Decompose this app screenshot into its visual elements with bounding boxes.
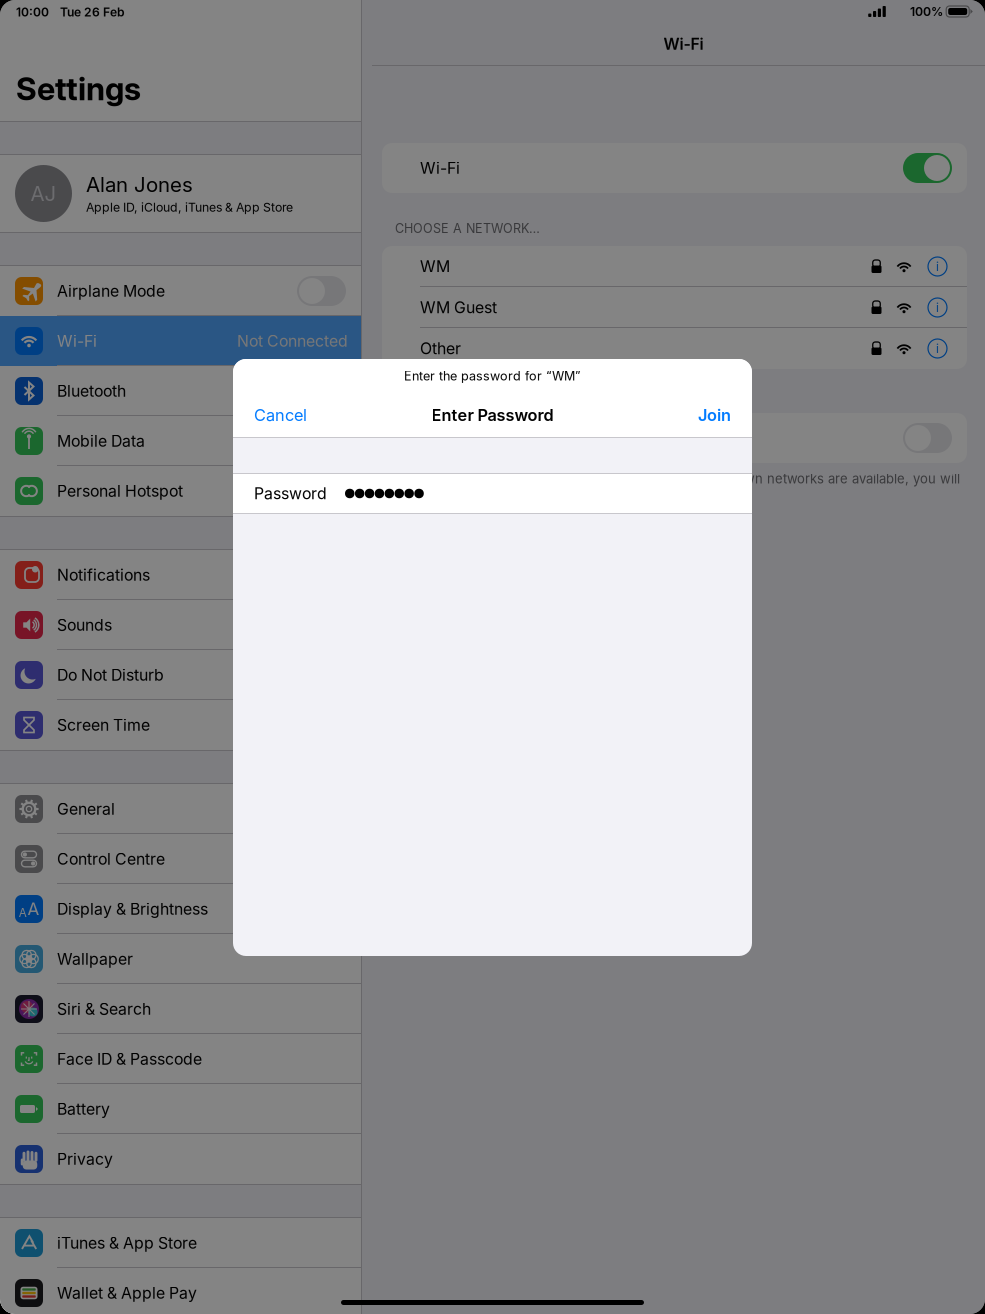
- staticText: A: [27, 898, 39, 920]
- button[interactable]: Wallpaper: [0, 934, 361, 984]
- staticText: Wi-Fi: [663, 34, 703, 53]
- button[interactable]: A: [0, 884, 361, 934]
- button[interactable]: Sounds: [0, 600, 361, 650]
- staticText: Known networks will be joined automatica…: [406, 471, 960, 502]
- button[interactable]: Bluetooth: [0, 366, 361, 416]
- button[interactable]: WM Guest: [382, 287, 967, 328]
- button[interactable]: Face ID & Passcode: [0, 1034, 361, 1084]
- staticText: A: [19, 906, 27, 920]
- button[interactable]: Control Centre: [0, 834, 361, 884]
- staticText: Do Not Disturb: [57, 665, 164, 684]
- staticText: Privacy: [57, 1149, 113, 1168]
- button[interactable]: Mobile Data: [0, 416, 361, 466]
- staticText: Password: [254, 484, 327, 503]
- button[interactable]: Join: [698, 393, 752, 437]
- staticText: i: [936, 341, 939, 356]
- staticText: Enter Password: [431, 405, 553, 425]
- staticText: Join: [698, 405, 731, 425]
- button[interactable]: General: [0, 784, 361, 834]
- staticText: Ask to Join Networks: [420, 428, 576, 447]
- staticText: Apple ID, iCloud, iTunes & App Store: [86, 200, 293, 215]
- staticText: Airplane Mode: [57, 281, 165, 300]
- button[interactable]: Notifications: [0, 550, 361, 600]
- staticText: iTunes & App Store: [57, 1233, 197, 1252]
- staticText: 100%: [910, 4, 943, 19]
- staticText: Bluetooth: [57, 381, 126, 400]
- staticText: Mobile Data: [57, 431, 145, 450]
- staticText: Settings: [16, 70, 141, 108]
- button[interactable]: Ask to Join Networks: [903, 423, 952, 453]
- button[interactable]: Do Not Disturb: [0, 650, 361, 700]
- button[interactable]: Wi-Fi: [0, 316, 361, 366]
- staticText: CHOOSE A NETWORK…: [395, 221, 540, 236]
- staticText: Enter the password for “WM”: [404, 368, 581, 384]
- staticText: Wi-Fi: [420, 158, 460, 177]
- button[interactable]: iTunes & App Store: [0, 1218, 361, 1268]
- staticText: Tue 26 Feb: [60, 5, 125, 19]
- staticText: General: [57, 799, 115, 818]
- staticText: Notifications: [57, 565, 150, 584]
- staticText: Wi-Fi: [57, 331, 97, 350]
- staticText: WM Guest: [420, 298, 497, 317]
- staticText: i: [936, 259, 939, 274]
- button[interactable]: Other: [382, 328, 967, 369]
- button[interactable]: Siri & Search: [0, 984, 361, 1034]
- button[interactable]: Airplane Mode: [0, 266, 361, 316]
- staticText: Wallet & Apple Pay: [57, 1283, 197, 1302]
- staticText: Personal Hotspot: [57, 481, 183, 500]
- staticText: Control Centre: [57, 849, 165, 868]
- staticText: Cancel: [254, 405, 307, 425]
- staticText: Battery: [57, 1099, 110, 1118]
- button[interactable]: Screen Time: [0, 700, 361, 750]
- button[interactable]: AJ: [0, 155, 361, 232]
- staticText: WM: [420, 257, 450, 276]
- button[interactable]: Airplane Mode: [297, 276, 346, 306]
- button[interactable]: Wi-Fi: [903, 153, 952, 183]
- staticText: AJ: [30, 181, 56, 206]
- staticText: Alan Jones: [86, 172, 193, 197]
- staticText: Screen Time: [57, 715, 150, 734]
- button[interactable]: Cancel: [233, 393, 307, 437]
- staticText: Sounds: [57, 615, 112, 634]
- button[interactable]: Personal Hotspot: [0, 466, 361, 516]
- button[interactable]: Wallet & Apple Pay: [0, 1268, 361, 1314]
- staticText: 10:00: [16, 5, 49, 19]
- staticText: Display & Brightness: [57, 899, 208, 918]
- staticText: Wallpaper: [57, 949, 133, 968]
- button[interactable]: WM: [382, 246, 967, 287]
- staticText: Not Connected: [237, 331, 348, 350]
- staticText: Siri & Search: [57, 999, 151, 1018]
- staticText: Face ID & Passcode: [57, 1049, 202, 1068]
- staticText: i: [936, 300, 939, 315]
- button[interactable]: Battery: [0, 1084, 361, 1134]
- staticText: Other: [420, 339, 461, 358]
- button[interactable]: Privacy: [0, 1134, 361, 1184]
